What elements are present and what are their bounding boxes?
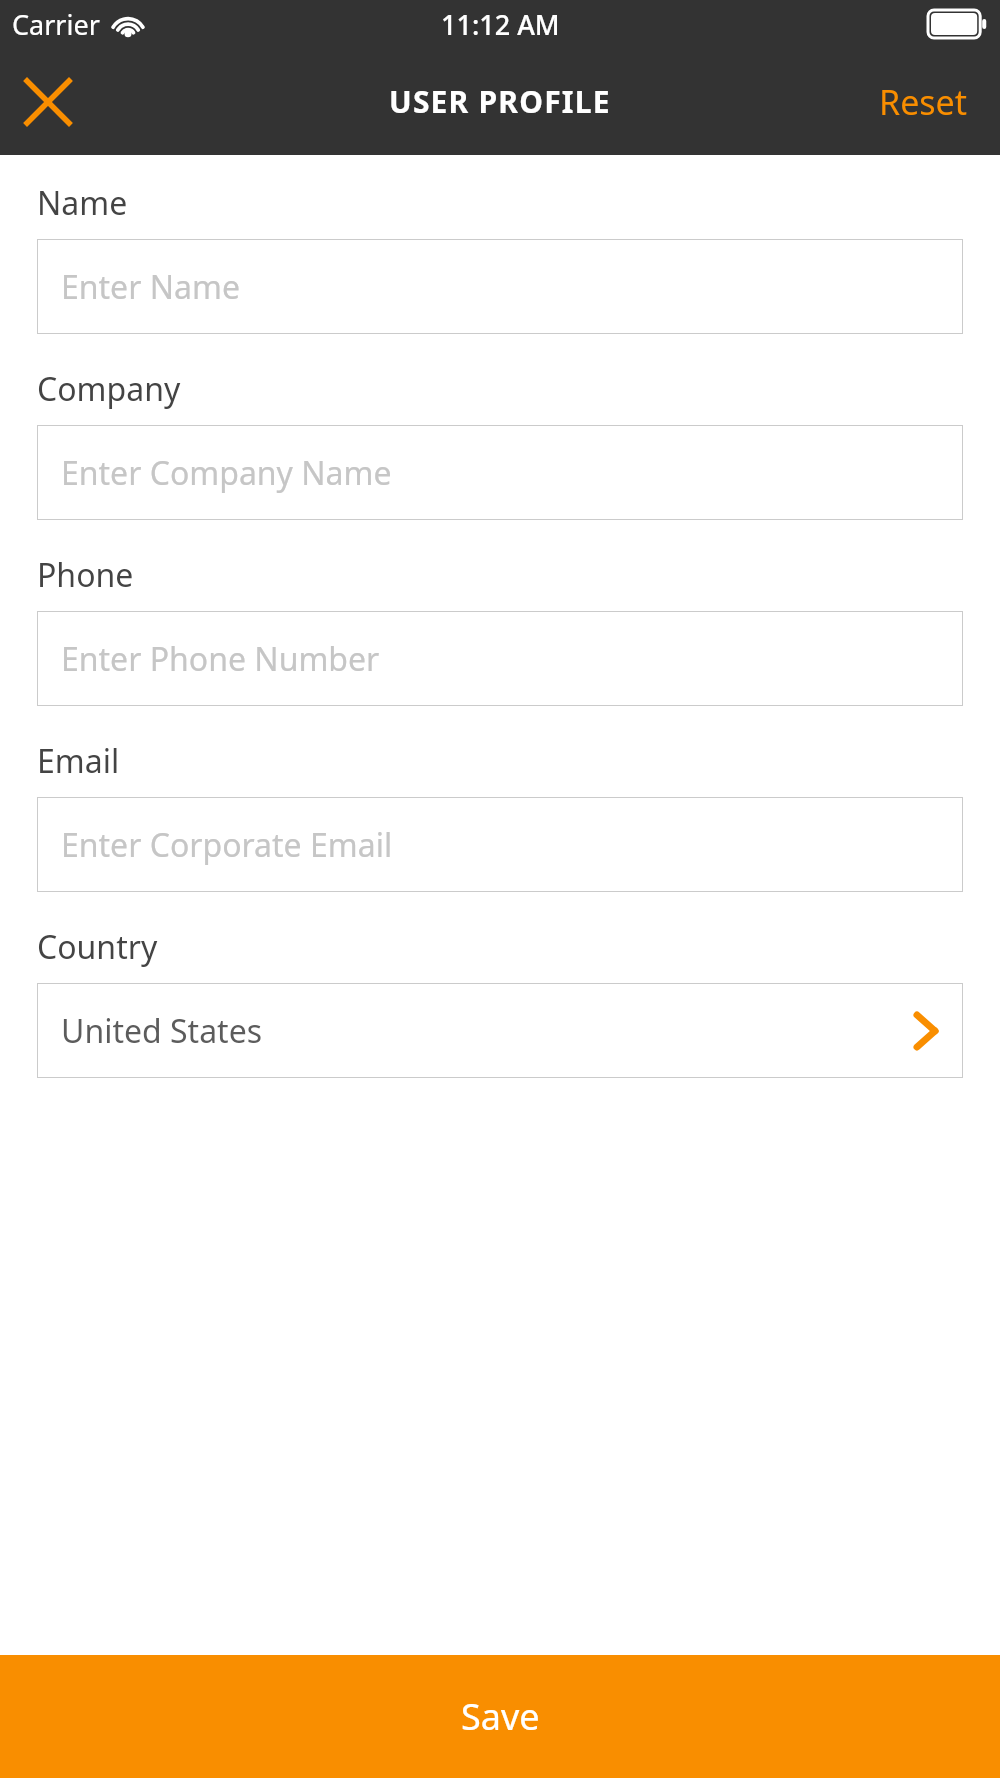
staticText: Enter Corporate Email xyxy=(61,823,393,867)
staticText: Reset xyxy=(879,79,968,125)
button[interactable]: Enter Name xyxy=(37,239,963,334)
button[interactable]: Save xyxy=(0,1655,1000,1778)
button[interactable]: Enter Phone Number xyxy=(37,611,963,706)
staticText: Company xyxy=(37,367,181,411)
staticText: 11:12 AM xyxy=(441,6,560,43)
staticText: Enter Company Name xyxy=(61,451,392,495)
button[interactable]: Enter Company Name xyxy=(37,425,963,520)
staticText: Name xyxy=(37,181,128,225)
button[interactable]: Reset xyxy=(865,65,982,139)
staticText: Save xyxy=(461,1692,540,1741)
button[interactable]: Close xyxy=(0,54,96,150)
staticText: Enter Phone Number xyxy=(61,637,380,681)
button[interactable]: Enter Corporate Email xyxy=(37,797,963,892)
staticText: USER PROFILE xyxy=(389,81,611,122)
staticText: Country xyxy=(37,925,158,969)
staticText: Carrier xyxy=(12,6,100,43)
staticText: United States xyxy=(61,1009,263,1053)
staticText: Email xyxy=(37,739,120,783)
staticText: Phone xyxy=(37,553,134,597)
button[interactable]: United States xyxy=(37,983,963,1078)
staticText: Enter Name xyxy=(61,265,240,309)
